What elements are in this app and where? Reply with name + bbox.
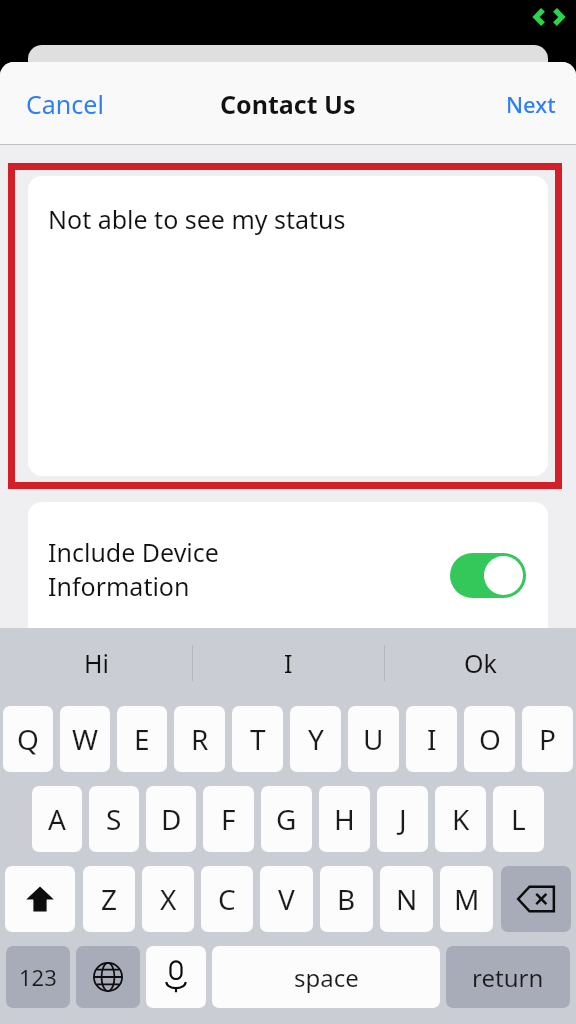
staticText: N (396, 880, 418, 918)
staticText: 123 (19, 962, 57, 992)
button[interactable]: Q (3, 706, 53, 772)
button[interactable]: space (212, 946, 440, 1008)
button[interactable]: Shift (5, 866, 75, 932)
button[interactable]: L (493, 786, 544, 852)
staticText: V (278, 880, 295, 918)
button[interactable]: Y (290, 706, 341, 772)
staticText: P (539, 720, 556, 758)
button[interactable]: N (380, 866, 433, 932)
staticText: S (106, 800, 122, 838)
button[interactable]: I (406, 706, 457, 772)
staticText: R (191, 720, 209, 758)
button[interactable]: Change keyboard language (76, 946, 140, 1008)
staticText: F (221, 800, 236, 838)
button[interactable]: Dictation (146, 946, 206, 1008)
button[interactable]: O (464, 706, 515, 772)
staticText: W (72, 720, 99, 758)
staticText: return (472, 961, 544, 994)
staticText: Hi (84, 646, 109, 680)
staticText: U (363, 720, 384, 758)
button[interactable]: U (348, 706, 399, 772)
button[interactable]: B (320, 866, 373, 932)
button[interactable]: W (60, 706, 110, 772)
button[interactable]: C (201, 866, 253, 932)
button[interactable]: M (440, 866, 493, 932)
button[interactable]: Z (83, 866, 135, 932)
staticText: T (250, 720, 266, 758)
button[interactable]: K (435, 786, 486, 852)
staticText: A (48, 800, 66, 838)
staticText: O (479, 720, 501, 758)
button[interactable]: R (174, 706, 225, 772)
staticText: Next (506, 89, 556, 119)
staticText: L (511, 800, 526, 838)
button[interactable]: I (193, 628, 384, 698)
staticText: E (134, 720, 150, 758)
button[interactable]: Ok (385, 628, 576, 698)
button[interactable]: S (89, 786, 139, 852)
button[interactable]: Cancel (10, 79, 120, 129)
staticText: G (276, 800, 297, 838)
button[interactable]: G (261, 786, 312, 852)
staticText: space (294, 961, 359, 994)
button[interactable]: Include Device Information (28, 502, 548, 662)
staticText: Contact Us (220, 87, 356, 121)
staticText: H (334, 800, 355, 838)
staticText: Y (308, 720, 324, 758)
staticText: C (218, 880, 236, 918)
button[interactable]: Not able to see my status (28, 176, 548, 476)
button[interactable]: F (203, 786, 254, 852)
staticText: B (337, 880, 356, 918)
button[interactable]: H (319, 786, 370, 852)
button[interactable]: J (377, 786, 428, 852)
staticText: I (427, 720, 437, 758)
staticText: I (284, 646, 293, 680)
button[interactable]: Next (496, 81, 566, 127)
button[interactable]: V (260, 866, 313, 932)
button[interactable]: return (446, 946, 570, 1008)
button[interactable]: Backspace (501, 866, 571, 932)
staticText: Not able to see my status (48, 202, 346, 236)
button[interactable]: Include device information toggle (450, 553, 526, 598)
button[interactable]: T (232, 706, 283, 772)
button[interactable]: Hi (0, 628, 192, 698)
staticText: Ok (464, 646, 497, 680)
button[interactable]: A (32, 786, 82, 852)
staticText: M (454, 880, 480, 918)
staticText: J (399, 800, 407, 838)
staticText: D (161, 800, 182, 838)
staticText: Z (101, 880, 118, 918)
button[interactable]: X (142, 866, 194, 932)
button[interactable]: D (146, 786, 196, 852)
staticText: Cancel (26, 87, 104, 121)
button[interactable]: E (117, 706, 167, 772)
button[interactable]: 123 (6, 946, 70, 1008)
staticText: K (452, 800, 470, 838)
staticText: Q (17, 720, 39, 758)
staticText: X (160, 880, 177, 918)
button[interactable]: P (522, 706, 573, 772)
staticText: Include Device Information (48, 535, 219, 603)
